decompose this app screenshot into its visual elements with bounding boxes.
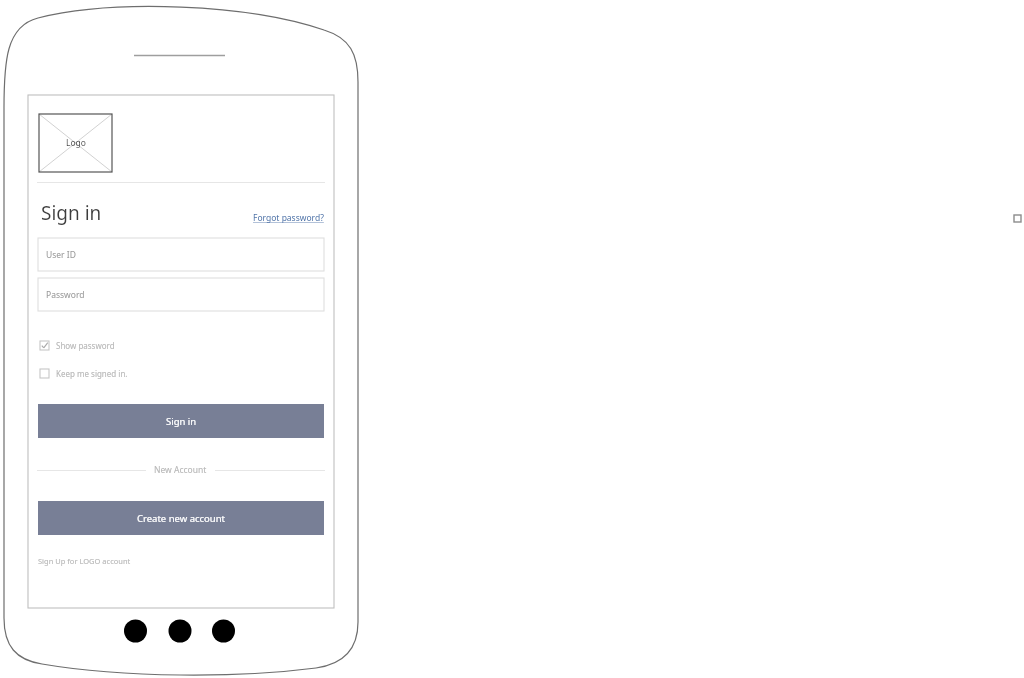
staticText: Forgot password? bbox=[253, 212, 324, 224]
staticText: Create new account bbox=[137, 512, 226, 525]
staticText: Logo bbox=[66, 137, 86, 149]
staticText: Password bbox=[46, 289, 85, 301]
button[interactable]: Forgot password? bbox=[253, 212, 324, 226]
button[interactable]: Show password bbox=[40, 340, 115, 351]
button[interactable]: Password bbox=[38, 278, 324, 311]
staticText: Sign in bbox=[166, 415, 197, 428]
staticText: Show password bbox=[56, 340, 115, 351]
staticText: Sign in bbox=[41, 200, 102, 226]
button[interactable]: Keep me signed in. bbox=[40, 368, 128, 379]
button[interactable]: User ID bbox=[38, 238, 324, 271]
button[interactable]: Sign in bbox=[38, 404, 324, 438]
staticText: User ID bbox=[46, 249, 76, 261]
staticText: Keep me signed in. bbox=[56, 368, 128, 379]
button[interactable]: Sign Up for LOGO account bbox=[38, 556, 131, 566]
staticText: New Account bbox=[154, 464, 207, 476]
button[interactable]: Create new account bbox=[38, 501, 324, 535]
